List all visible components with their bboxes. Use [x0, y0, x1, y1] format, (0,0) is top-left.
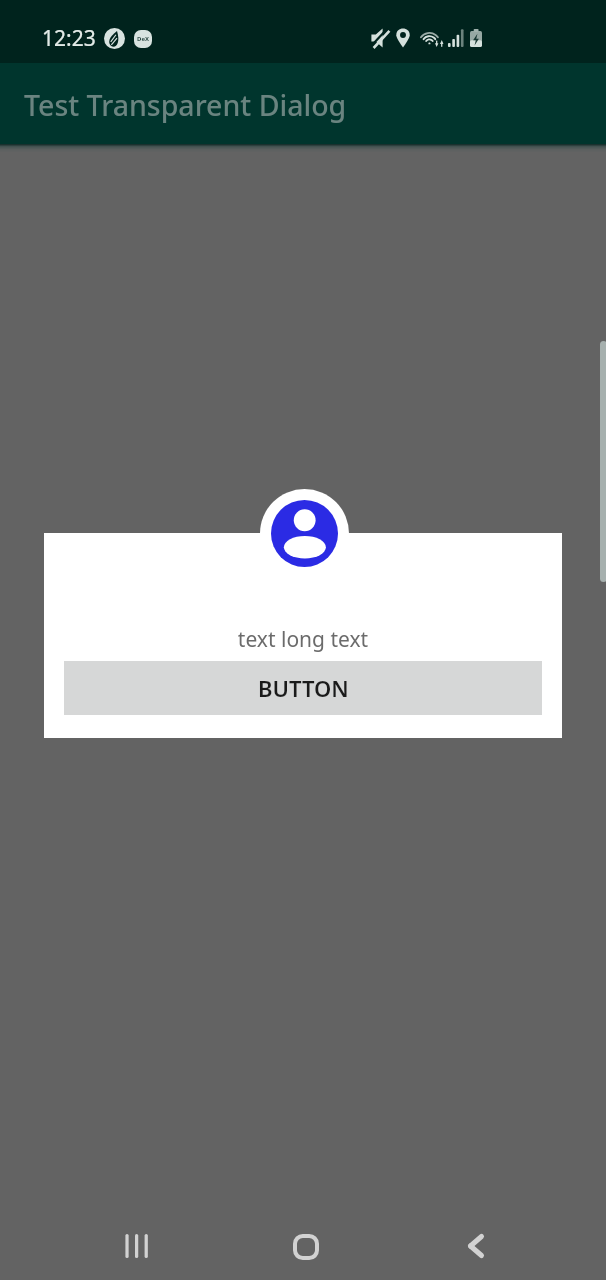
staticText: DeX — [137, 35, 149, 43]
staticText: BUTTON — [258, 673, 349, 703]
button[interactable]: Recent apps — [95, 1216, 175, 1276]
staticText: 12:23 — [42, 24, 96, 53]
button[interactable]: BUTTON — [64, 661, 542, 715]
button[interactable]: Home — [266, 1217, 346, 1277]
button[interactable]: Back — [436, 1216, 516, 1276]
button[interactable]: Dismiss dialog — [0, 0, 606, 1280]
staticText: text long text — [44, 625, 562, 654]
staticText: Test Transparent Dialog — [24, 86, 347, 125]
